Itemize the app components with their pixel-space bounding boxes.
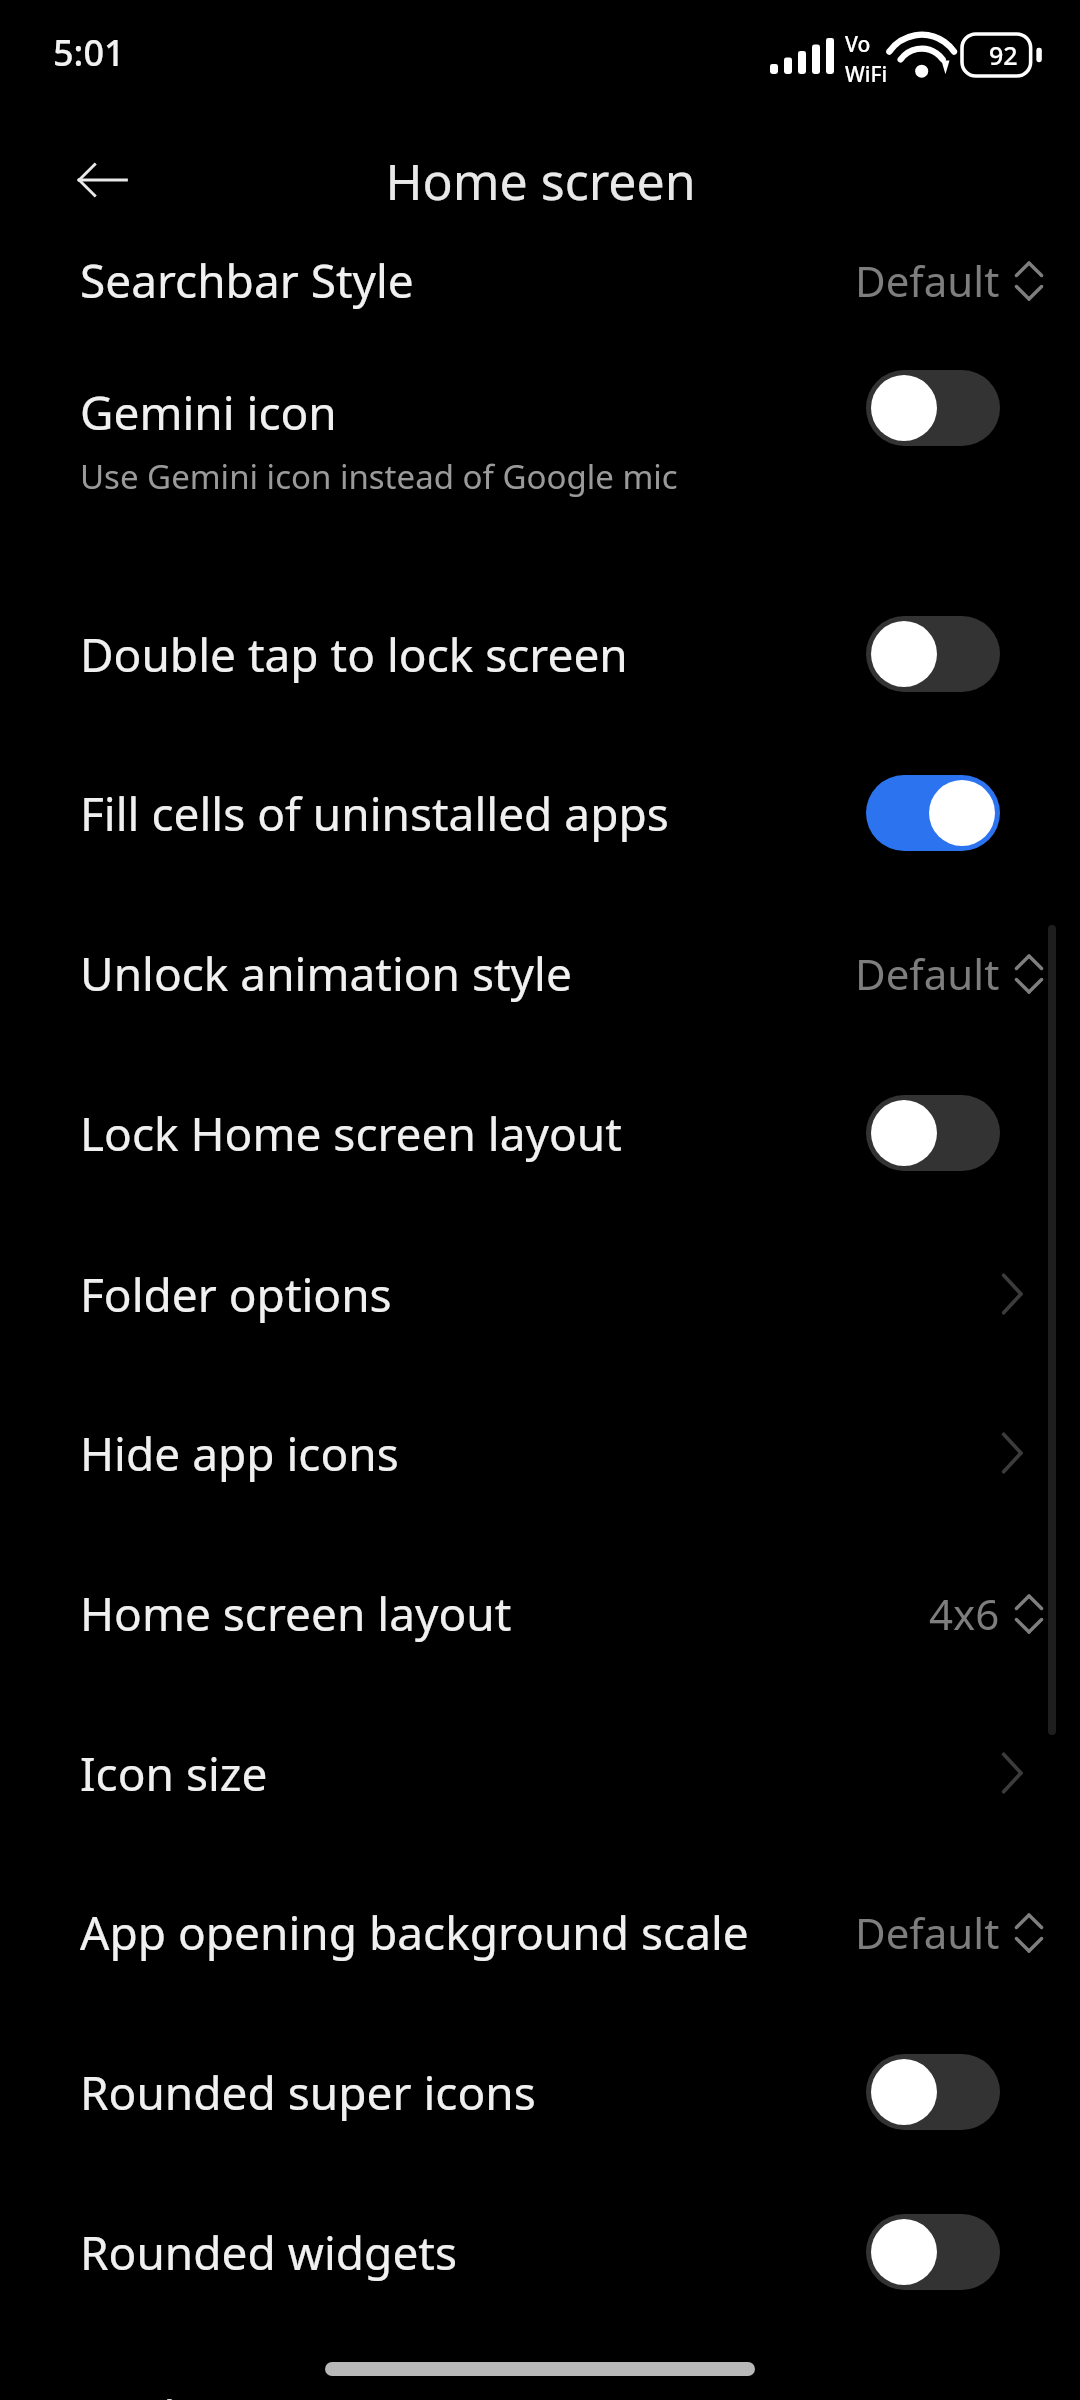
button[interactable]: Home screen layout — [0, 1547, 1080, 1679]
staticText: Lock Home screen layout — [80, 1102, 622, 1165]
staticText: Default — [855, 252, 1000, 309]
staticText: 4x6 — [929, 1585, 1000, 1642]
button[interactable]: Double tap to lock screen — [866, 616, 1000, 692]
button[interactable]: Default — [855, 252, 1044, 309]
button[interactable]: Rounded super icons — [0, 2026, 1080, 2158]
button[interactable]: Default — [855, 945, 1044, 1002]
button[interactable]: Fill cells of uninstalled apps — [866, 775, 1000, 851]
staticText: Home screen — [385, 147, 696, 215]
staticText: Fill cells of uninstalled apps — [80, 782, 669, 845]
button[interactable]: Rounded super icons — [866, 2054, 1000, 2130]
staticText: WiFi — [845, 60, 888, 89]
staticText: Dock size — [80, 2385, 282, 2400]
staticText: App opening background scale — [80, 1901, 749, 1964]
staticText: Icon size — [80, 1742, 268, 1805]
button[interactable]: Dock size — [0, 2385, 1080, 2400]
staticText: Double tap to lock screen — [80, 623, 628, 686]
button[interactable]: Gemini icon — [0, 365, 1080, 515]
button[interactable]: Folder options — [980, 1262, 1044, 1326]
button[interactable]: Unlock animation style — [0, 907, 1080, 1039]
staticText: Rounded super icons — [80, 2061, 536, 2124]
staticText: Use Gemini icon instead of Google mic — [80, 454, 678, 499]
staticText: Rounded widgets — [80, 2221, 457, 2284]
button[interactable]: Back — [62, 140, 142, 220]
button[interactable]: Folder options — [0, 1228, 1080, 1360]
staticText: Home screen layout — [80, 1582, 512, 1645]
staticText: Unlock animation style — [80, 942, 572, 1005]
staticText: Folder options — [80, 1263, 392, 1326]
button[interactable]: Rounded widgets — [866, 2214, 1000, 2290]
button[interactable]: Fill cells of uninstalled apps — [0, 747, 1080, 879]
button[interactable]: Default — [855, 1904, 1044, 1961]
button[interactable]: Icon size — [980, 1741, 1044, 1805]
staticText: 92 — [989, 38, 1018, 72]
staticText: Default — [855, 1904, 1000, 1961]
button[interactable]: Icon size — [0, 1707, 1080, 1839]
button[interactable]: Lock Home screen layout — [0, 1067, 1080, 1199]
button[interactable]: Hide app icons — [0, 1387, 1080, 1519]
staticText: Default — [855, 945, 1000, 1002]
staticText: Vo — [845, 30, 871, 59]
button[interactable]: 4x6 — [929, 1585, 1044, 1642]
button[interactable]: Gemini icon — [866, 370, 1000, 446]
button[interactable]: Hide app icons — [980, 1421, 1044, 1485]
button[interactable]: App opening background scale — [0, 1866, 1080, 1998]
staticText: Gemini icon — [80, 381, 337, 444]
button[interactable]: Lock Home screen layout — [866, 1095, 1000, 1171]
staticText: 5:01 — [53, 28, 125, 77]
button[interactable]: Double tap to lock screen — [0, 588, 1080, 720]
staticText: Hide app icons — [80, 1422, 399, 1485]
button[interactable]: Rounded widgets — [0, 2186, 1080, 2318]
button[interactable]: Searchbar Style — [0, 214, 1080, 346]
staticText: Searchbar Style — [80, 249, 414, 312]
